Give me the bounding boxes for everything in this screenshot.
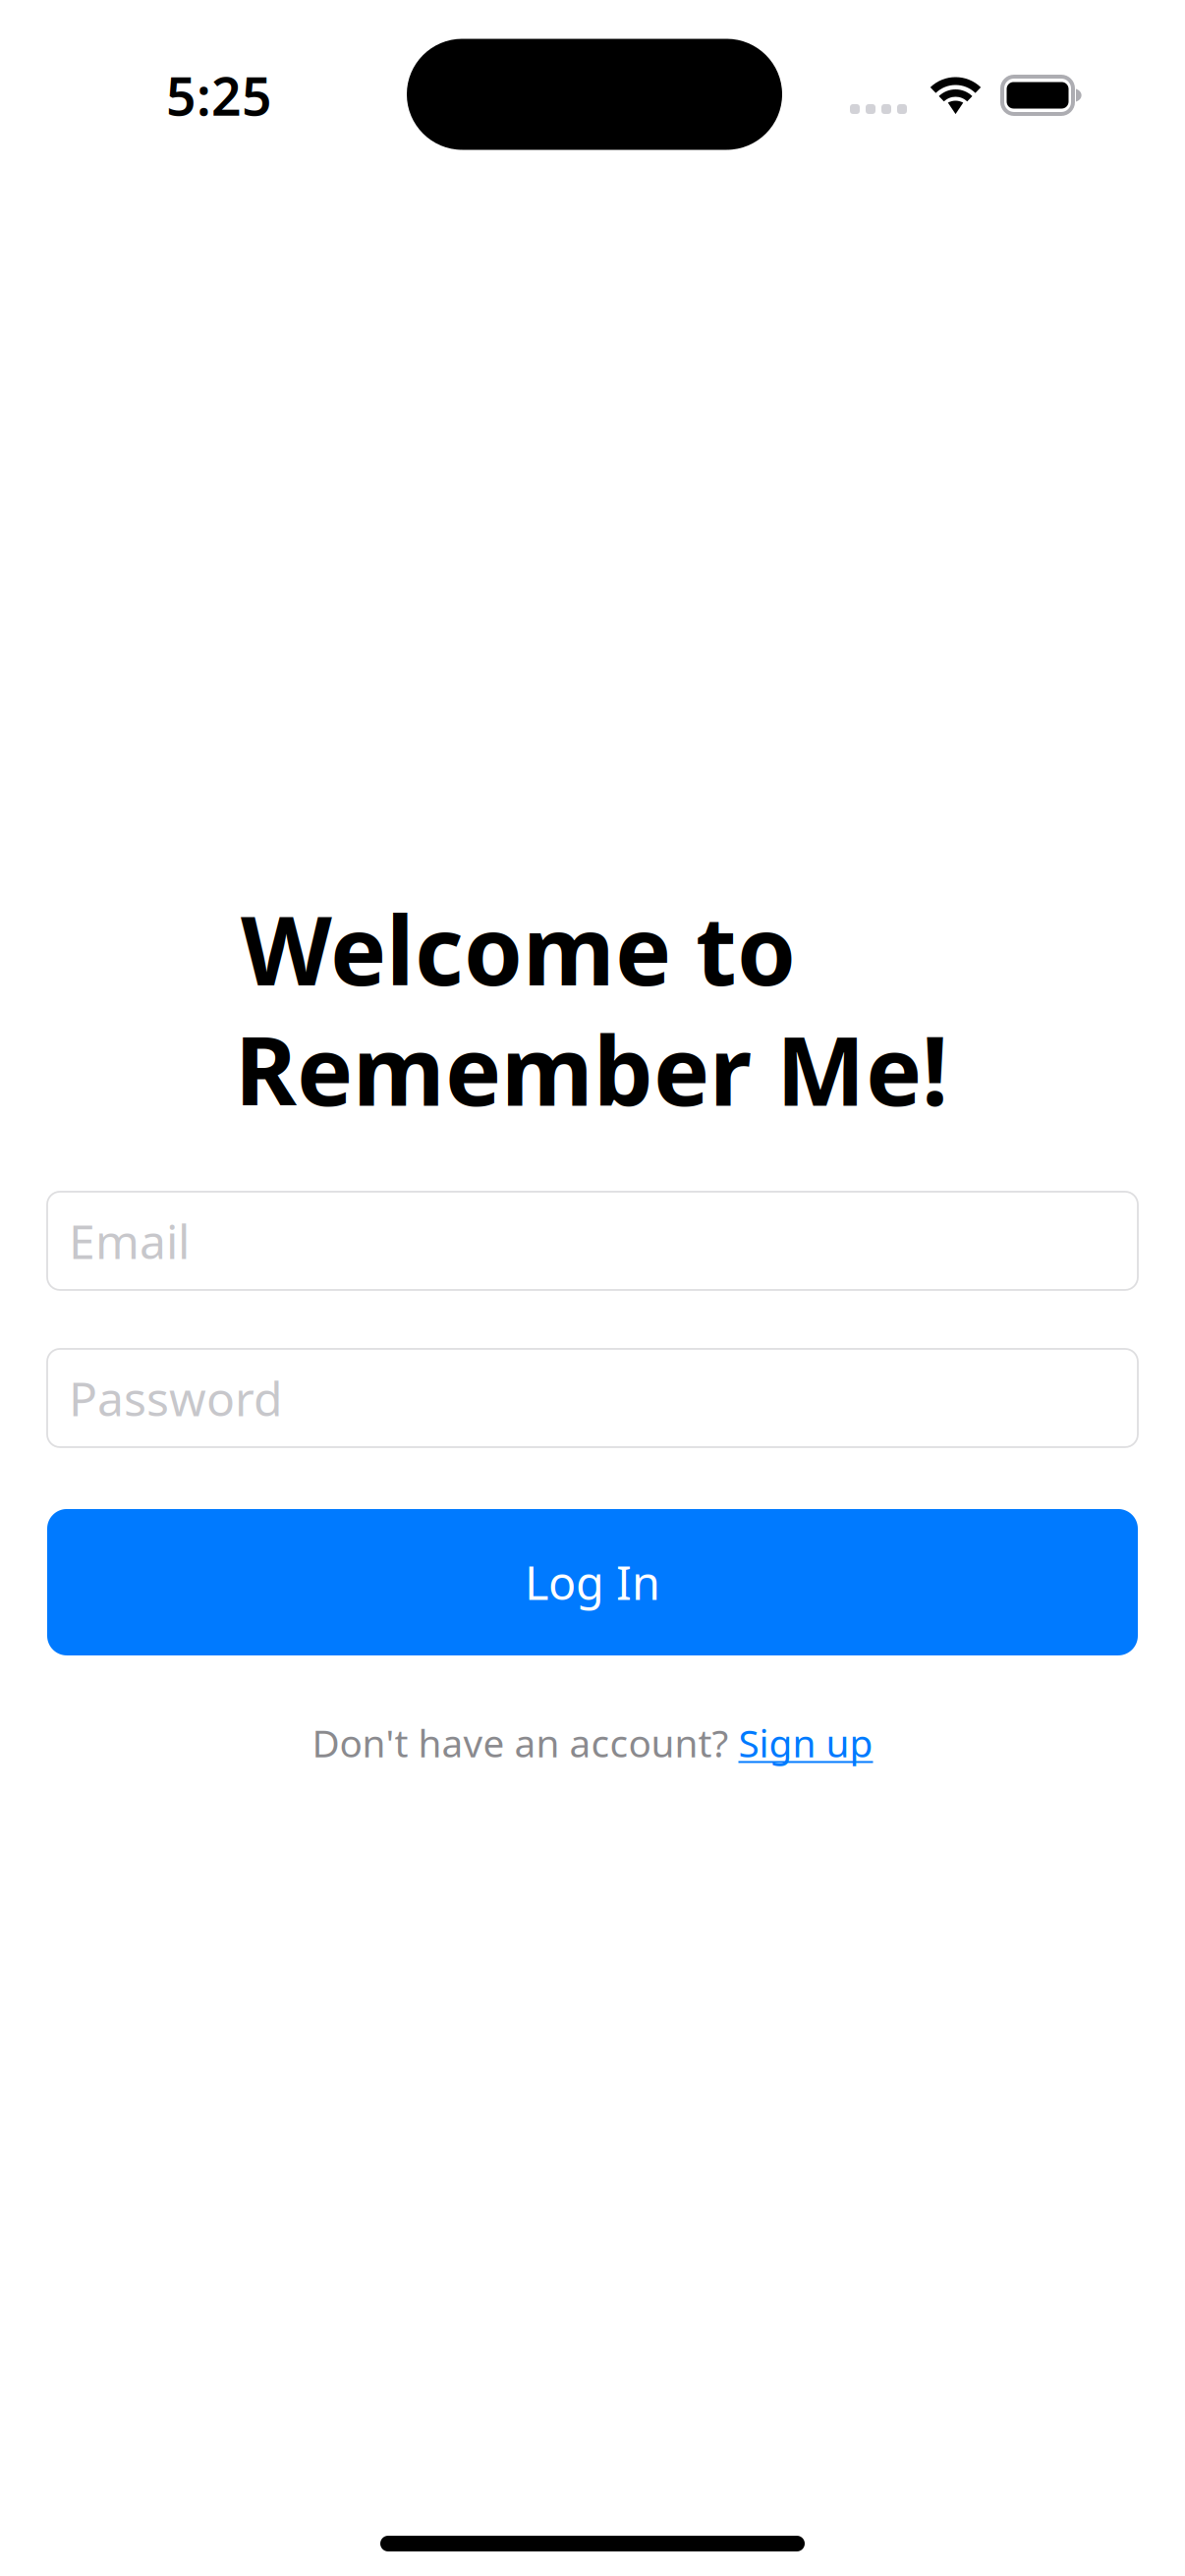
staticText: Welcome to bbox=[241, 886, 796, 1011]
staticText: Remember Me! bbox=[235, 1007, 948, 1132]
staticText: Password bbox=[69, 1367, 283, 1429]
staticText: Log In bbox=[525, 1552, 660, 1613]
secureTextField[interactable]: Password bbox=[47, 1349, 1138, 1447]
staticText: 5:25 bbox=[166, 61, 272, 130]
staticText: Don't have an account? bbox=[312, 1717, 738, 1768]
staticText: Email bbox=[69, 1210, 190, 1272]
button[interactable]: Log In bbox=[47, 1509, 1138, 1655]
button[interactable]: Sign up bbox=[738, 1717, 873, 1768]
staticText: Sign up bbox=[738, 1717, 873, 1768]
textField[interactable]: Email bbox=[47, 1192, 1138, 1290]
